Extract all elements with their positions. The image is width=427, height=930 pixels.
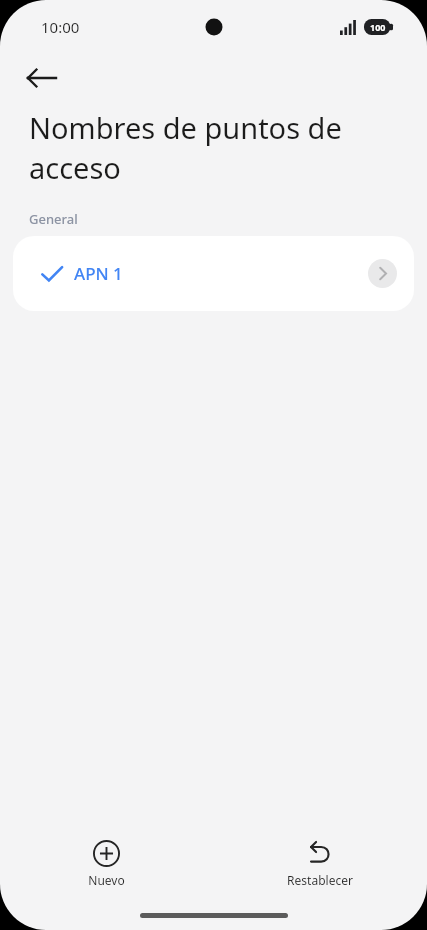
button[interactable]: Nuevo	[0, 834, 213, 894]
button[interactable]: Restablecer	[213, 834, 427, 894]
staticText: General	[29, 210, 78, 228]
button[interactable]: Edit APN 1	[368, 259, 397, 288]
staticText: Restablecer	[287, 872, 353, 888]
staticText: 100	[370, 21, 386, 33]
button[interactable]: Back	[18, 54, 66, 102]
staticText: 10:00	[41, 17, 80, 37]
button[interactable]: APN 1	[13, 236, 414, 311]
staticText: APN 1	[74, 262, 123, 285]
staticText: Nombres de puntos de acceso	[29, 108, 342, 188]
staticText: Nuevo	[88, 872, 125, 888]
